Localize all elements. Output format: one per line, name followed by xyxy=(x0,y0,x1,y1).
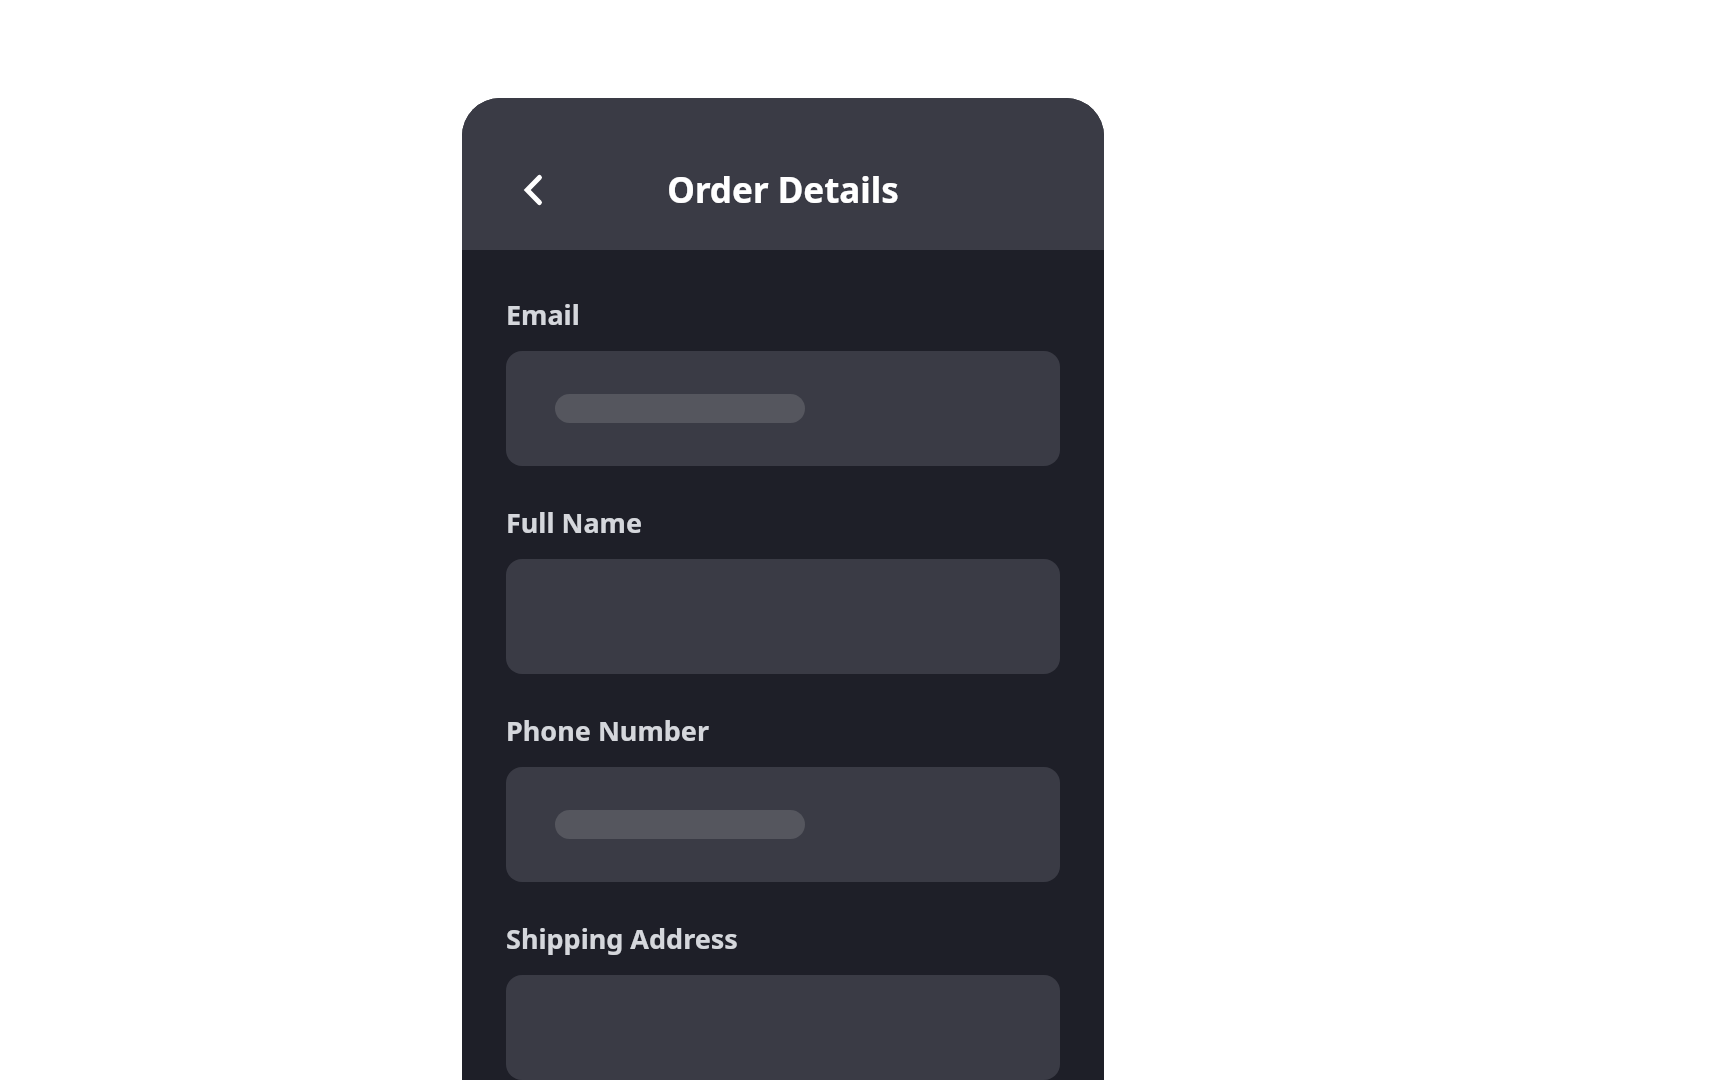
staticText: Phone Number xyxy=(506,712,709,749)
button[interactable]: Back xyxy=(506,162,562,218)
staticText: Full Name xyxy=(506,504,643,541)
staticText: Shipping Address xyxy=(506,920,738,957)
staticText: Order Details xyxy=(462,166,1104,214)
button[interactable] xyxy=(506,767,1060,882)
button[interactable] xyxy=(506,351,1060,466)
staticText: Email xyxy=(506,296,580,333)
